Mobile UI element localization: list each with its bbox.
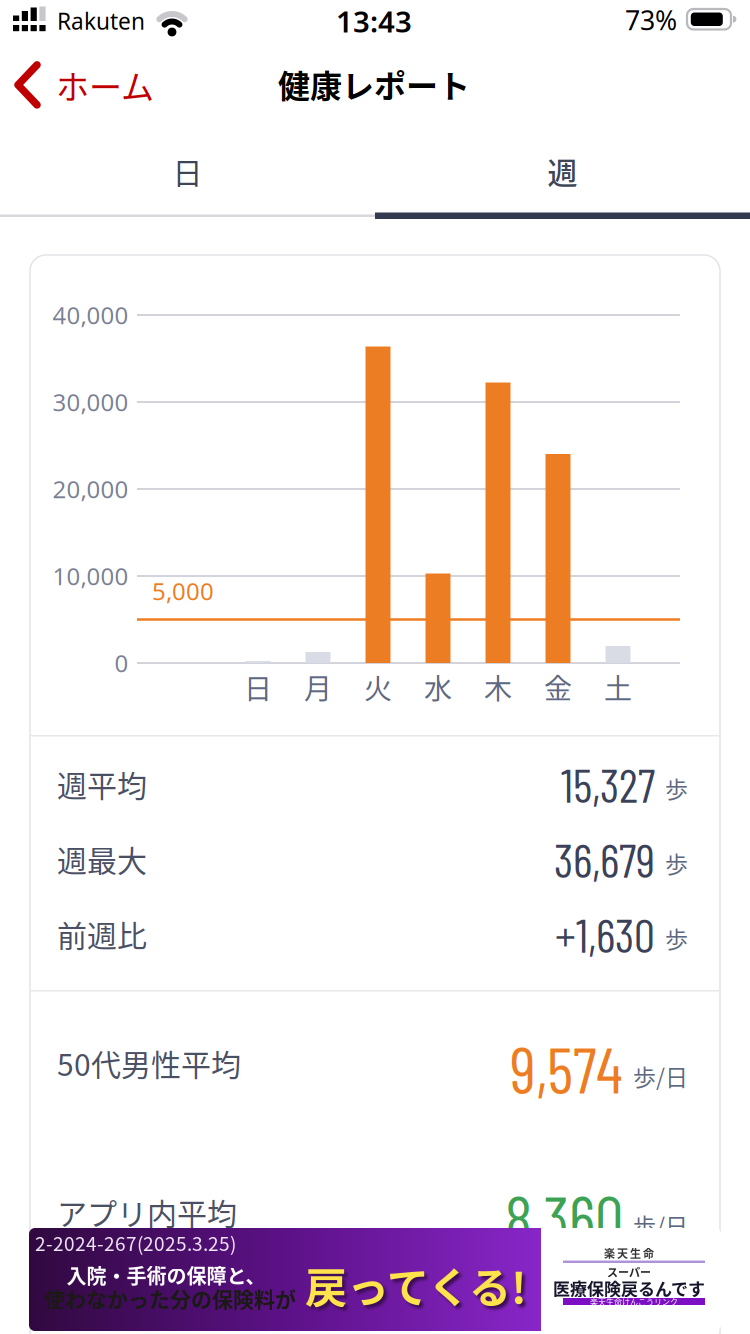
- staticText: 0: [114, 647, 128, 679]
- staticText: 歩: [665, 846, 688, 880]
- staticText: 30,000: [52, 386, 128, 418]
- staticText: 週最大: [57, 837, 147, 881]
- staticText: 歩/日: [633, 1059, 688, 1093]
- staticText: 2-2024-267(2025.3.25): [35, 1229, 236, 1256]
- button[interactable]: ホーム: [14, 61, 154, 109]
- staticText: 40,000: [52, 299, 128, 331]
- staticText: 楽 天 生 命: [604, 1245, 654, 1261]
- staticText: 前週比: [57, 912, 147, 956]
- staticText: 週平均: [57, 762, 147, 806]
- staticText: 入院・手術の保障と、: [66, 1260, 265, 1289]
- staticText: 金: [544, 667, 572, 707]
- staticText: 戻ってくる!: [305, 1255, 527, 1315]
- staticText: 月: [304, 667, 332, 707]
- staticText: 週: [547, 149, 577, 193]
- staticText: 50代男性平均: [57, 1041, 241, 1085]
- staticText: 健康レポート: [278, 61, 470, 107]
- staticText: 5,000: [152, 575, 214, 607]
- staticText: 13:43: [336, 1, 412, 40]
- staticText: 使わなかった分の保険料が: [44, 1283, 296, 1313]
- staticText: 9,574: [510, 1030, 623, 1106]
- button[interactable]: 日: [0, 130, 375, 212]
- staticText: 20,000: [52, 473, 128, 505]
- staticText: 楽天生命けんこうリンク: [590, 1296, 678, 1307]
- staticText: 木: [484, 667, 512, 707]
- staticText: 歩/日: [633, 1208, 688, 1242]
- staticText: 73%: [625, 2, 677, 38]
- staticText: スーパー: [607, 1264, 651, 1280]
- staticText: 歩: [665, 771, 688, 805]
- staticText: 8,360: [505, 1179, 623, 1255]
- staticText: 36,679: [554, 831, 655, 887]
- staticText: 火: [364, 667, 392, 707]
- staticText: 歩: [665, 921, 688, 955]
- staticText: Rakuten: [57, 6, 145, 36]
- staticText: 医療保険戻るんです: [553, 1276, 705, 1300]
- staticText: 10,000: [52, 560, 128, 592]
- button[interactable]: 2-2024-267(2025.3.25): [29, 1228, 721, 1331]
- staticText: 日: [244, 667, 272, 707]
- staticText: +1,630: [555, 906, 655, 962]
- staticText: ホーム: [56, 61, 154, 109]
- staticText: 15,327: [561, 756, 655, 812]
- staticText: 日: [172, 149, 202, 193]
- button[interactable]: 週: [375, 130, 750, 212]
- staticText: 土: [604, 667, 632, 707]
- staticText: 水: [424, 667, 452, 707]
- staticText: アプリ内平均: [57, 1190, 237, 1234]
